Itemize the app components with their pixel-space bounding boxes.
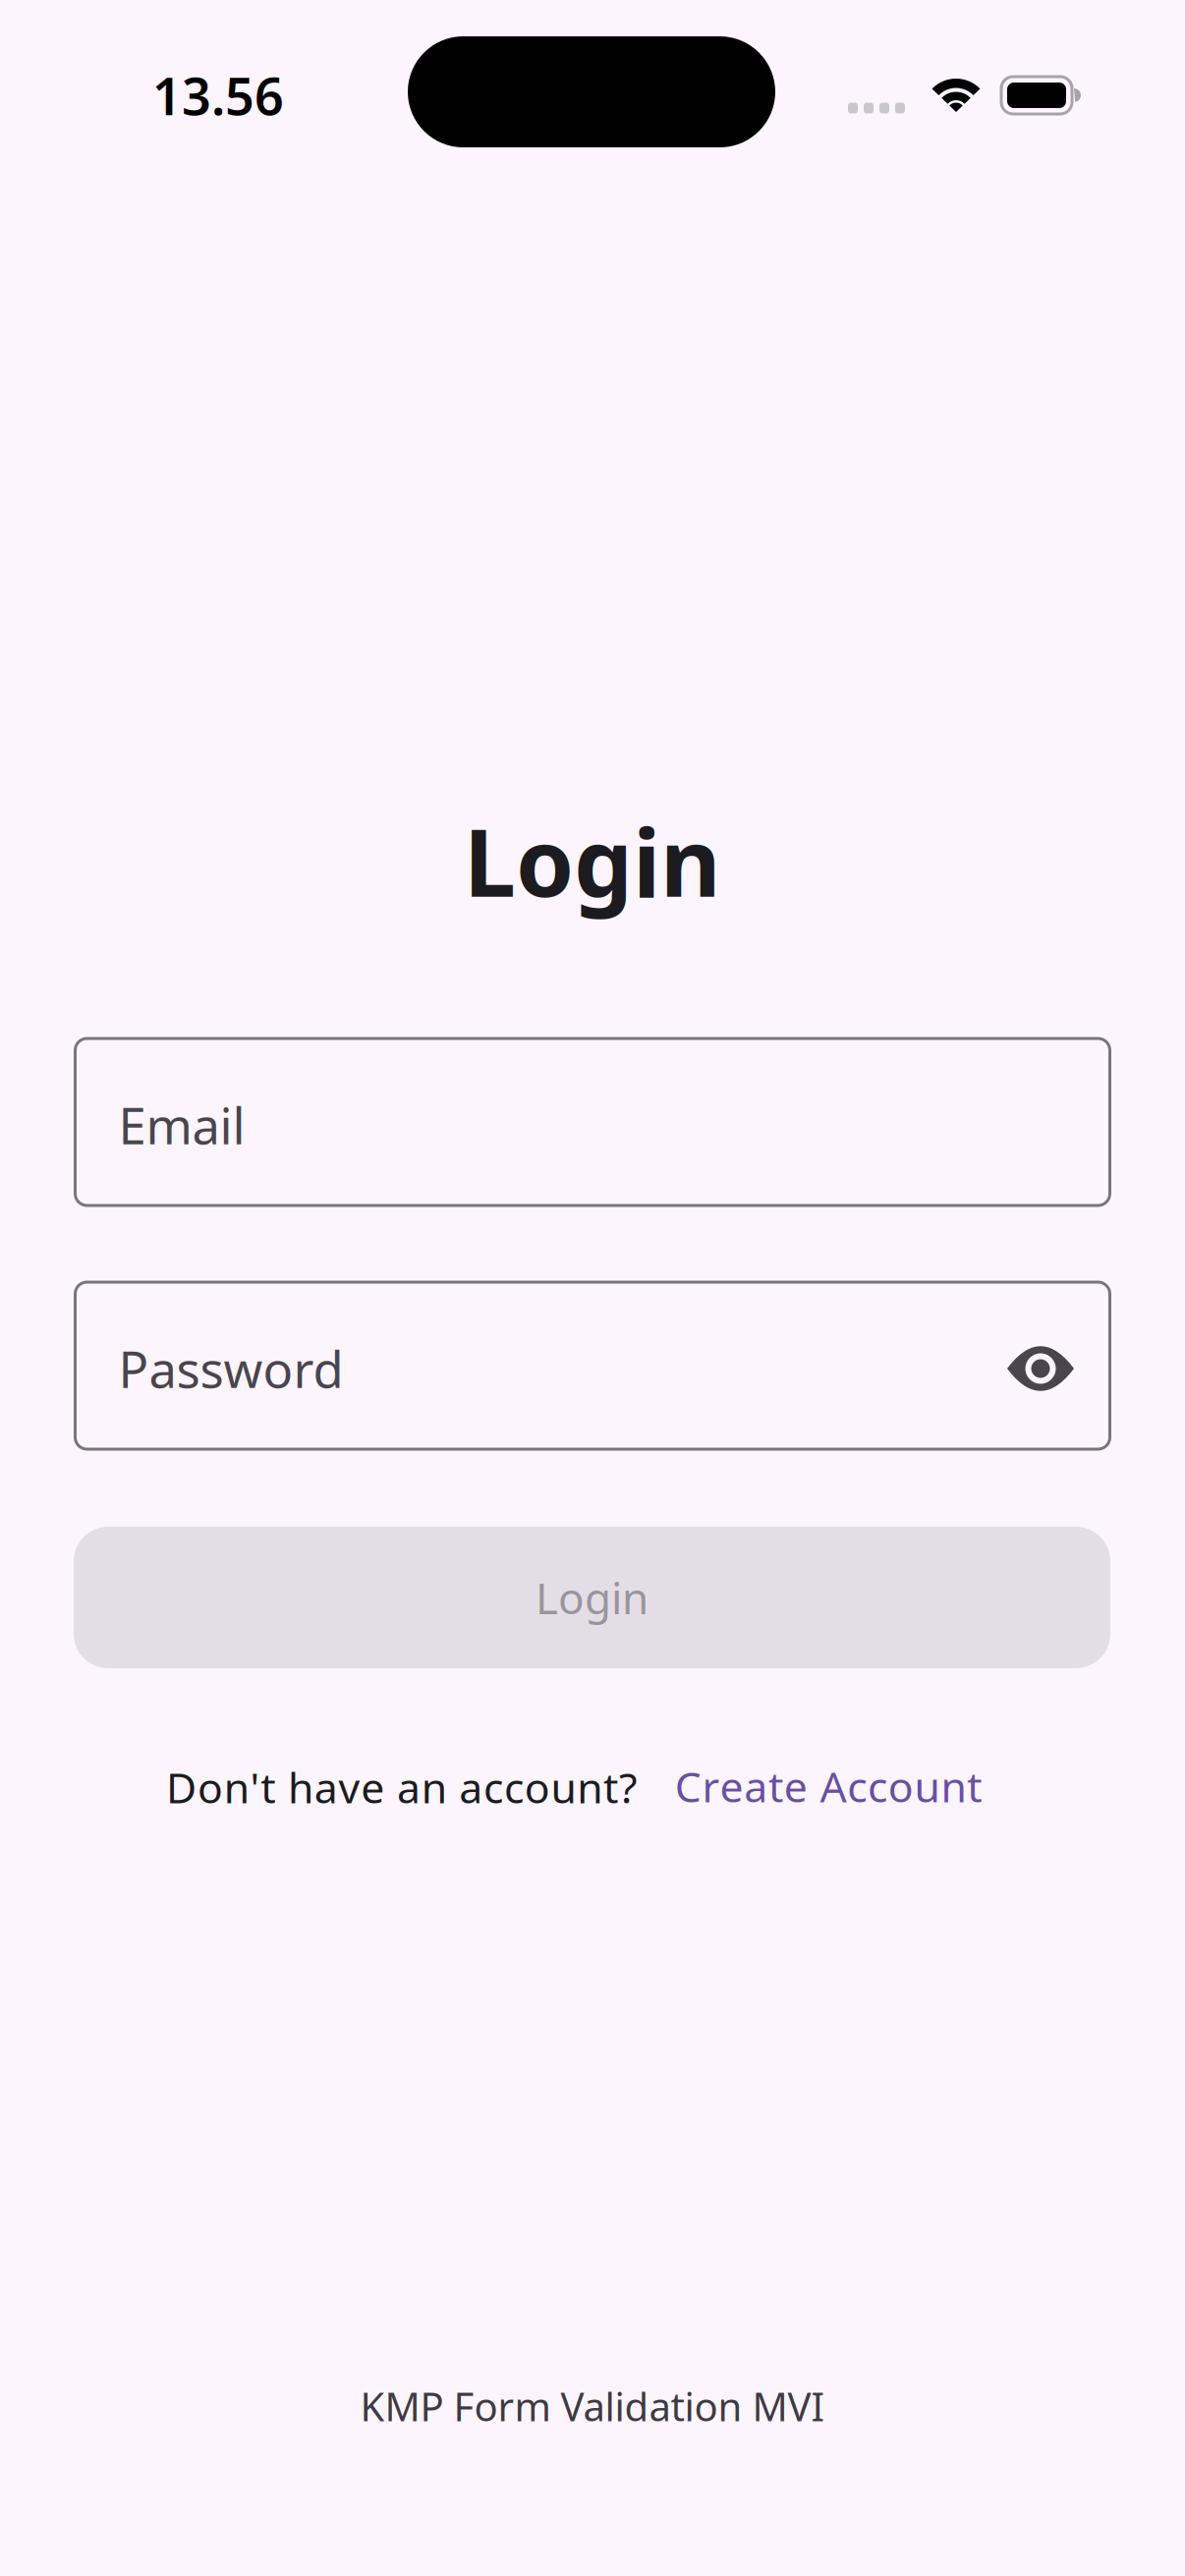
staticText: Email bbox=[118, 1092, 245, 1158]
staticText: Login bbox=[464, 799, 721, 922]
staticText: KMP Form Validation MVI bbox=[360, 2380, 825, 2432]
button[interactable]: Login bbox=[74, 1527, 1110, 1668]
button[interactable]: Password bbox=[75, 1282, 1110, 1449]
staticText: Password bbox=[118, 1336, 343, 1402]
staticText: Login bbox=[536, 1569, 649, 1626]
staticText: 13.56 bbox=[152, 61, 284, 129]
staticText: Don't have an account? bbox=[166, 1759, 638, 1815]
button[interactable]: Email bbox=[75, 1038, 1110, 1205]
button[interactable]: Create Account bbox=[675, 1758, 982, 1814]
button[interactable]: Show password bbox=[1007, 1346, 1074, 1391]
staticText: Create Account bbox=[675, 1758, 982, 1814]
